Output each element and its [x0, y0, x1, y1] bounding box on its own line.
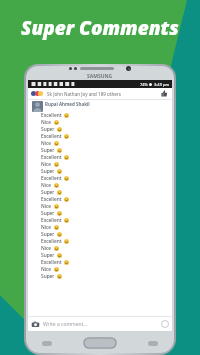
- button[interactable]: Home: [83, 337, 117, 349]
- button[interactable]: Like: [160, 89, 169, 98]
- staticText: 74%: [140, 82, 148, 87]
- button[interactable]: Super: [32, 147, 172, 154]
- staticText: Nice: [41, 224, 52, 231]
- staticText: Nice: [41, 140, 52, 147]
- staticText: Super Comments: [21, 15, 179, 41]
- button[interactable]: Super: [32, 168, 172, 175]
- staticText: Super: [41, 231, 55, 238]
- button[interactable]: Nice: [32, 203, 172, 210]
- staticText: Rupai Ahmed Shakil: [45, 101, 90, 107]
- button[interactable]: Super: [32, 231, 172, 238]
- button[interactable]: Nice: [32, 161, 172, 168]
- button[interactable]: Nice: [32, 224, 172, 231]
- staticText: Nice: [41, 161, 52, 168]
- button[interactable]: Nice: [32, 266, 172, 273]
- button[interactable]: Back: [148, 341, 158, 346]
- button[interactable]: Rupai Ahmed Shakil: [32, 101, 172, 112]
- button[interactable]: Excellent: [32, 175, 172, 182]
- button[interactable]: Nice: [32, 119, 172, 126]
- button[interactable]: Add photo: [31, 320, 40, 329]
- button[interactable]: Recents: [42, 341, 52, 346]
- button[interactable]: Excellent: [32, 133, 172, 140]
- staticText: Nice: [41, 119, 52, 126]
- button[interactable]: Super: [32, 210, 172, 217]
- staticText: Excellent: [41, 238, 62, 245]
- button[interactable]: Sticker: [161, 320, 169, 328]
- staticText: Nice: [41, 182, 52, 189]
- button[interactable]: Super: [32, 273, 172, 280]
- button[interactable]: Excellent: [32, 112, 172, 119]
- staticText: Super: [41, 210, 55, 217]
- staticText: Write a comment...: [43, 321, 88, 328]
- button[interactable]: Excellent: [32, 217, 172, 224]
- staticText: Sk John Nathan Joy and 189 others: [47, 91, 121, 97]
- staticText: Excellent: [41, 112, 62, 119]
- staticText: Nice: [41, 266, 52, 273]
- button[interactable]: Super: [32, 126, 172, 133]
- button[interactable]: Nice: [32, 245, 172, 252]
- button[interactable]: Excellent: [32, 196, 172, 203]
- staticText: Nice: [41, 245, 52, 252]
- staticText: Excellent: [41, 133, 62, 140]
- staticText: Excellent: [41, 259, 62, 266]
- button[interactable]: Nice: [32, 140, 172, 147]
- button[interactable]: Excellent: [32, 259, 172, 266]
- staticText: Super: [41, 252, 55, 259]
- staticText: SAMSUNG: [87, 73, 113, 80]
- staticText: Super: [41, 273, 55, 280]
- staticText: Excellent: [41, 196, 62, 203]
- button[interactable]: Super: [32, 189, 172, 196]
- staticText: Super: [41, 168, 55, 175]
- staticText: Super: [41, 126, 55, 133]
- staticText: Super: [41, 189, 55, 196]
- staticText: Excellent: [41, 217, 62, 224]
- button[interactable]: Excellent: [32, 154, 172, 161]
- staticText: Super: [41, 147, 55, 154]
- staticText: Excellent: [41, 175, 62, 182]
- staticText: Excellent: [41, 154, 62, 161]
- button[interactable]: Add photo: [28, 317, 172, 331]
- button[interactable]: Sk John Nathan Joy and 189 others: [28, 88, 172, 99]
- button[interactable]: Super: [32, 252, 172, 259]
- staticText: 3:49 pm: [154, 82, 170, 87]
- button[interactable]: Excellent: [32, 238, 172, 245]
- staticText: Nice: [41, 203, 52, 210]
- button[interactable]: Nice: [32, 182, 172, 189]
